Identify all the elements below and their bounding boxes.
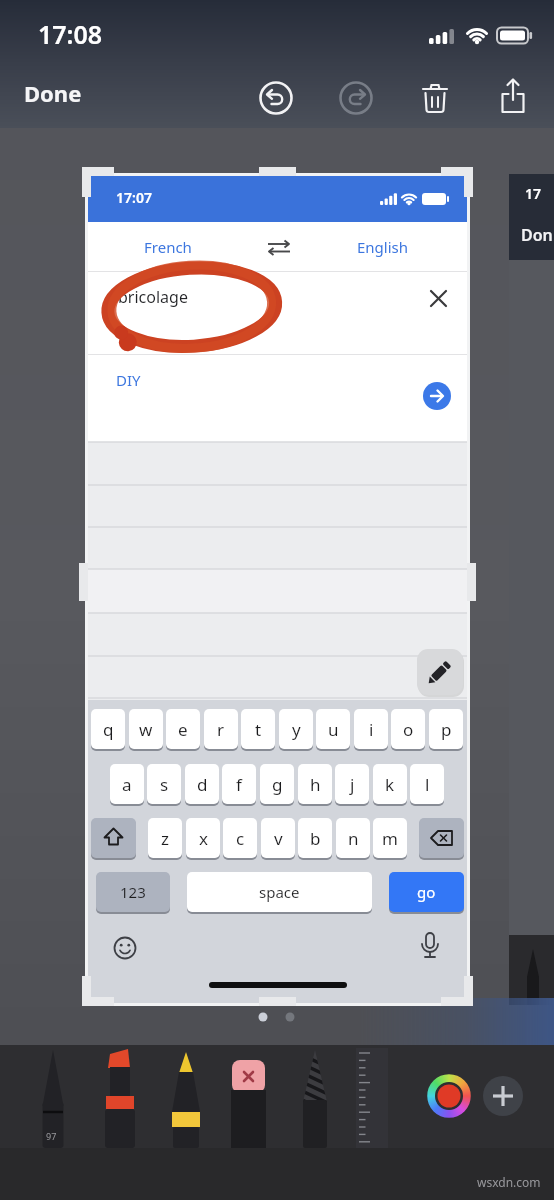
- staticText: 17:08: [38, 17, 103, 51]
- staticText: l: [425, 773, 430, 796]
- staticText: 17:07: [116, 188, 152, 207]
- staticText: French: [144, 237, 192, 257]
- button[interactable]: [338, 80, 374, 116]
- staticText: o: [403, 718, 414, 741]
- staticText: m: [382, 827, 398, 850]
- button[interactable]: [427, 1074, 471, 1118]
- staticText: r: [217, 718, 225, 741]
- button[interactable]: [483, 1076, 523, 1116]
- staticText: a: [122, 773, 132, 796]
- button[interactable]: [38, 1048, 72, 1148]
- staticText: v: [274, 827, 283, 850]
- staticText: u: [328, 718, 339, 741]
- button[interactable]: [495, 74, 531, 118]
- button[interactable]: [168, 1048, 202, 1148]
- staticText: x: [199, 827, 208, 850]
- staticText: t: [255, 718, 262, 741]
- staticText: d: [197, 773, 208, 796]
- staticText: 123: [120, 882, 146, 902]
- staticText: c: [236, 827, 245, 850]
- button[interactable]: [354, 1048, 388, 1148]
- staticText: y: [292, 718, 301, 741]
- staticText: n: [348, 827, 359, 850]
- staticText: space: [259, 882, 300, 902]
- staticText: j: [350, 773, 355, 796]
- button[interactable]: [103, 1048, 137, 1148]
- staticText: i: [369, 718, 374, 741]
- staticText: z: [161, 827, 169, 850]
- staticText: wsxdn.com: [477, 1174, 541, 1190]
- staticText: 17: [525, 184, 542, 203]
- staticText: p: [441, 718, 452, 741]
- staticText: English: [357, 237, 409, 257]
- staticText: Done: [24, 78, 82, 108]
- staticText: h: [310, 773, 321, 796]
- staticText: go: [417, 882, 436, 902]
- button[interactable]: [300, 1048, 334, 1148]
- staticText: q: [103, 718, 114, 741]
- staticText: DIY: [116, 370, 141, 390]
- staticText: k: [385, 773, 395, 796]
- button[interactable]: Done: [16, 76, 96, 118]
- button[interactable]: [230, 1048, 264, 1148]
- staticText: Don: [521, 224, 553, 246]
- button[interactable]: [252, 1008, 302, 1028]
- staticText: g: [272, 773, 283, 796]
- staticText: e: [178, 718, 188, 741]
- button[interactable]: [417, 78, 453, 116]
- staticText: w: [139, 718, 153, 741]
- button[interactable]: [258, 80, 294, 116]
- staticText: s: [160, 773, 169, 796]
- staticText: f: [236, 773, 242, 796]
- staticText: 97: [46, 1130, 57, 1142]
- staticText: b: [310, 827, 321, 850]
- staticText: bricolage: [118, 286, 188, 308]
